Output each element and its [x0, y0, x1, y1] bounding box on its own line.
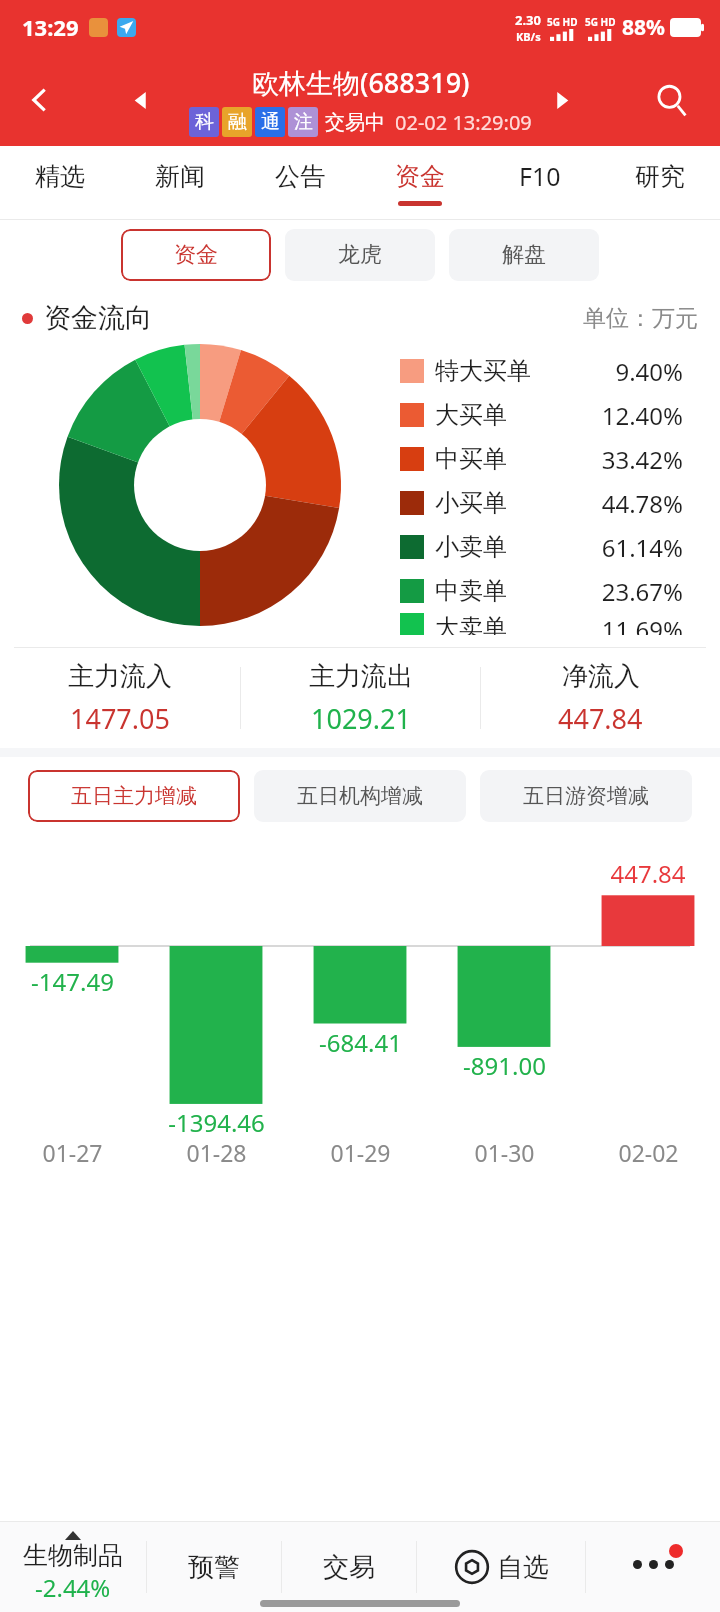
- button[interactable]: 资金: [121, 229, 271, 281]
- staticText: 精选: [35, 161, 85, 192]
- staticText: 大买单: [435, 400, 507, 430]
- button[interactable]: 返回: [16, 76, 64, 124]
- staticText: 解盘: [502, 241, 546, 269]
- button[interactable]: 搜索: [646, 74, 698, 126]
- staticText: 23.67%: [601, 575, 683, 608]
- staticText: 注: [294, 110, 313, 134]
- staticText: 资金: [174, 241, 218, 269]
- staticText: 资金流向: [44, 301, 152, 335]
- staticText: 融: [228, 110, 247, 134]
- staticText: 龙虎: [338, 241, 382, 269]
- staticText: 自选: [497, 1551, 549, 1584]
- staticText: 研究: [635, 161, 685, 192]
- staticText: 44.78%: [601, 487, 683, 520]
- staticText: 五日游资增减: [523, 783, 649, 809]
- staticText: 11.69%: [601, 613, 683, 635]
- staticText: 9.40%: [615, 355, 683, 388]
- button[interactable]: 公告: [240, 146, 360, 220]
- staticText: 五日机构增减: [297, 783, 423, 809]
- staticText: 交易中: [325, 110, 385, 135]
- staticText: 447.84: [610, 857, 686, 890]
- button[interactable]: 五日主力增减: [28, 770, 240, 822]
- staticText: 净流入: [562, 660, 640, 693]
- staticText: 2.30: [515, 11, 541, 29]
- staticText: 科: [195, 110, 214, 134]
- button[interactable]: 交易: [282, 1522, 416, 1612]
- button[interactable]: 新闻: [120, 146, 240, 220]
- staticText: -2.44%: [35, 1571, 111, 1604]
- staticText: 01-28: [186, 1137, 247, 1168]
- staticText: 1477.05: [70, 700, 170, 737]
- staticText: 中买单: [435, 444, 507, 474]
- staticText: KB/s: [516, 29, 541, 44]
- button[interactable]: 五日机构增减: [254, 770, 466, 822]
- staticText: -891.00: [463, 1049, 546, 1082]
- button[interactable]: F10: [480, 146, 600, 220]
- staticText: 通: [261, 110, 280, 134]
- staticText: 小卖单: [435, 532, 507, 562]
- staticText: 小买单: [435, 488, 507, 518]
- staticText: 01-29: [330, 1137, 391, 1168]
- staticText: 生物制品: [23, 1540, 123, 1571]
- button[interactable]: 研究: [600, 146, 720, 220]
- staticText: 单位：万元: [583, 304, 698, 333]
- staticText: 5G HD: [547, 15, 578, 29]
- staticText: 主力流出: [309, 660, 413, 693]
- staticText: 大卖单: [435, 613, 507, 635]
- staticText: 02-02: [618, 1137, 679, 1168]
- button[interactable]: 自选: [417, 1522, 585, 1612]
- button[interactable]: 五日游资增减: [480, 770, 692, 822]
- button[interactable]: 生物制品: [0, 1522, 146, 1612]
- staticText: -1394.46: [168, 1106, 265, 1139]
- button[interactable]: 下一只: [538, 77, 584, 123]
- staticText: 预警: [188, 1551, 240, 1584]
- staticText: 13:29: [22, 12, 79, 42]
- button[interactable]: 资金: [360, 146, 480, 220]
- staticText: 1029.21: [311, 700, 411, 737]
- staticText: 新闻: [155, 161, 205, 192]
- staticText: 公告: [275, 161, 325, 192]
- staticText: 01-27: [42, 1137, 103, 1168]
- staticText: 交易: [323, 1551, 375, 1584]
- staticText: 欧林生物(688319): [252, 64, 470, 101]
- button[interactable]: 精选: [0, 146, 120, 220]
- staticText: 12.40%: [601, 399, 683, 432]
- staticText: 中卖单: [435, 576, 507, 606]
- staticText: 88%: [622, 13, 665, 42]
- button[interactable]: 解盘: [449, 229, 599, 281]
- staticText: 01-30: [474, 1137, 535, 1168]
- staticText: 447.84: [558, 700, 643, 737]
- staticText: -684.41: [319, 1026, 402, 1059]
- staticText: F10: [519, 159, 561, 193]
- staticText: 特大买单: [435, 356, 531, 386]
- staticText: 五日主力增减: [71, 783, 197, 809]
- button[interactable]: 更多: [586, 1522, 720, 1612]
- staticText: -147.49: [31, 965, 114, 998]
- button[interactable]: 预警: [147, 1522, 281, 1612]
- button[interactable]: 龙虎: [285, 229, 435, 281]
- staticText: 33.42%: [601, 443, 683, 476]
- button[interactable]: 上一只: [118, 77, 164, 123]
- staticText: 资金: [395, 161, 445, 192]
- staticText: 主力流入: [68, 660, 172, 693]
- staticText: 5G HD: [585, 15, 616, 29]
- staticText: 02-02 13:29:09: [395, 109, 532, 136]
- staticText: 61.14%: [601, 531, 683, 564]
